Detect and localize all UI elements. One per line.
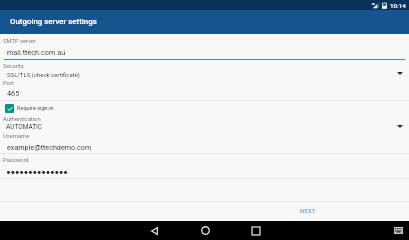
button[interactable]: Home [187, 221, 221, 240]
button[interactable]: Hide keyboard [390, 221, 407, 240]
button[interactable]: Authentication [0, 114, 409, 131]
staticText: SSL/TLS (check certificate) [7, 71, 80, 78]
button[interactable]: Username [0, 131, 409, 152]
staticText: mail.ttech.com.au [7, 48, 66, 56]
staticText: SMTP server [3, 38, 36, 45]
button[interactable]: Security [0, 61, 409, 78]
staticText: AUTOMATIC [6, 123, 43, 131]
staticText: Require sign-in [17, 105, 54, 112]
staticText: NEXT [300, 208, 316, 215]
staticText: Security [3, 63, 24, 70]
staticText: Outgoing server settings [10, 17, 97, 26]
staticText: Authentication [3, 116, 41, 123]
button[interactable]: Outgoing server settings [0, 10, 409, 34]
button[interactable]: Port [0, 78, 409, 99]
button[interactable]: NEXT [294, 202, 322, 220]
button[interactable]: Password [0, 155, 409, 177]
staticText: example@ttechdemo.com [7, 143, 92, 151]
button[interactable]: Recent apps [238, 221, 272, 240]
staticText: 465 [7, 89, 20, 98]
staticText: 10:14 [390, 2, 406, 9]
button[interactable]: Back [136, 221, 170, 240]
button[interactable]: SMTP server [0, 35, 409, 59]
button[interactable]: Require sign-in [0, 102, 409, 115]
staticText: Username [3, 133, 30, 140]
staticText: Password [3, 157, 29, 164]
staticText: Port [3, 80, 14, 87]
